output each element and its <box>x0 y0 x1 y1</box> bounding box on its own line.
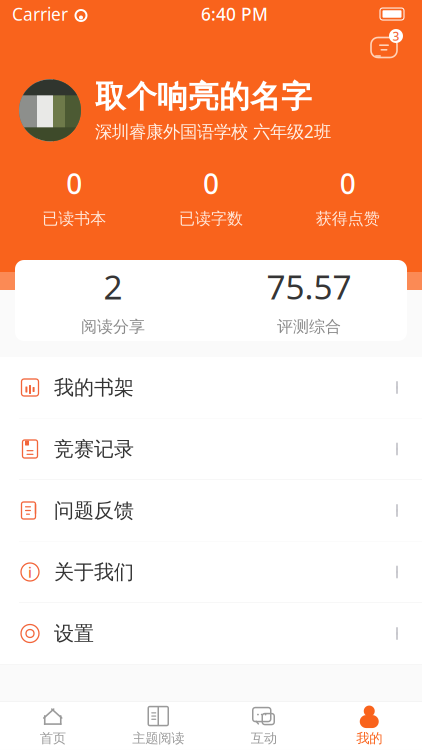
button[interactable]: 主题阅读 <box>105 702 211 750</box>
button[interactable]: 首页 <box>0 702 105 750</box>
staticText: 设置 <box>54 621 94 646</box>
staticText: i <box>28 562 32 582</box>
button[interactable]: 问题反馈 <box>0 480 422 541</box>
button[interactable]: i <box>0 541 422 603</box>
staticText: 已读字数 <box>179 209 243 229</box>
staticText: 问题反馈 <box>54 498 134 523</box>
staticText: 6:40 PM <box>201 2 268 25</box>
button[interactable]: 互动 <box>211 702 316 750</box>
staticText: 首页 <box>40 730 66 746</box>
staticText: 2 <box>103 264 122 309</box>
button[interactable]: 竞赛记录 <box>0 418 422 480</box>
button[interactable]: Messages <box>366 28 406 62</box>
staticText: Carrier <box>12 2 68 25</box>
staticText: 0 <box>66 165 82 202</box>
staticText: 主题阅读 <box>132 730 184 746</box>
staticText: 0 <box>340 165 356 202</box>
staticText: 0 <box>203 165 219 202</box>
staticText: 评测综合 <box>277 317 341 336</box>
staticText: 获得点赞 <box>316 209 380 229</box>
staticText: 深圳睿康外国语学校 六年级2班 <box>95 120 331 143</box>
staticText: 已读书本 <box>42 209 106 229</box>
button[interactable]: 设置 <box>0 603 422 664</box>
button[interactable]: 我的书架 <box>0 357 422 418</box>
staticText: 关于我们 <box>54 560 134 584</box>
staticText: 75.57 <box>266 264 351 309</box>
staticText: 我的书架 <box>54 375 134 400</box>
staticText: 互动 <box>251 730 277 746</box>
staticText: 我的 <box>356 730 382 746</box>
button[interactable]: 我的 <box>316 702 422 750</box>
staticText: 3 <box>392 28 399 44</box>
staticText: 阅读分享 <box>81 317 145 336</box>
staticText: 取个响亮的名字 <box>95 78 312 116</box>
staticText: 竞赛记录 <box>54 437 134 461</box>
